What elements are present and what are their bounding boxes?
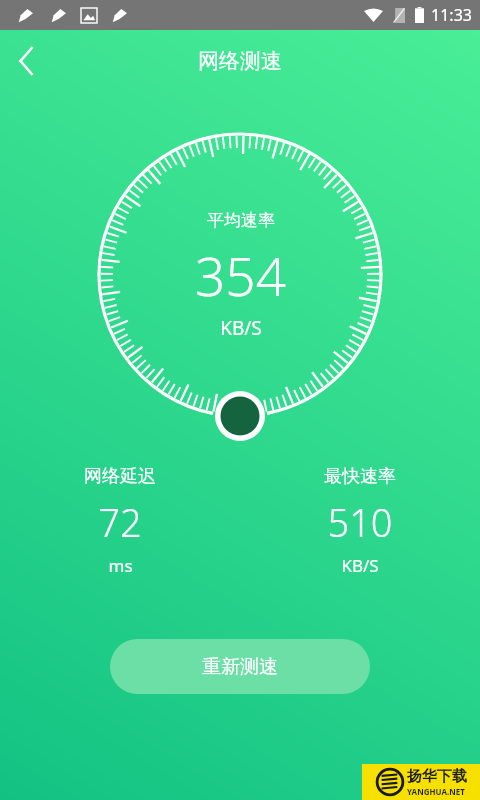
staticText: 72 xyxy=(98,496,142,548)
staticText: KB/S xyxy=(220,315,262,341)
staticText: 最快速率 xyxy=(324,465,396,488)
staticText: 重新测速 xyxy=(202,655,278,679)
staticText: YANGHUA.NET xyxy=(407,786,465,797)
staticText: 354 xyxy=(195,239,286,311)
staticText: KB/S xyxy=(341,554,379,577)
staticText: 11:33 xyxy=(431,4,472,26)
staticText: 扬华下载 xyxy=(407,767,467,786)
staticText: 网络延迟 xyxy=(84,465,156,488)
staticText: 网络测速 xyxy=(198,48,282,74)
button[interactable]: 重新测速 xyxy=(110,639,370,694)
staticText: 510 xyxy=(327,496,393,548)
staticText: 平均速率 xyxy=(207,210,275,231)
button[interactable]: Back xyxy=(0,35,52,87)
staticText: ms xyxy=(108,554,133,577)
